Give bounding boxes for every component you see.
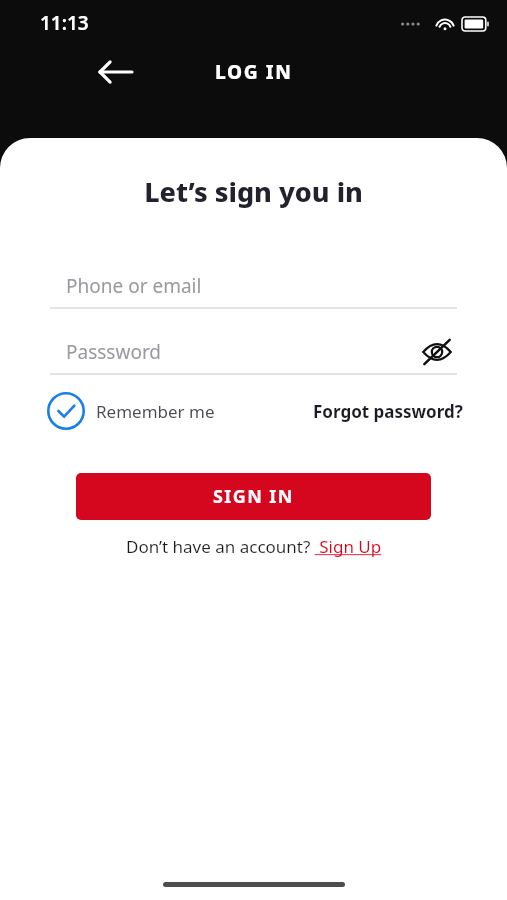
button[interactable]: Passsword bbox=[50, 331, 457, 373]
staticText: 11:13 bbox=[40, 10, 89, 36]
button[interactable]: Back bbox=[88, 49, 144, 95]
staticText: Don’t have an account? Sign Up bbox=[126, 535, 382, 558]
button[interactable]: SIGN IN bbox=[76, 473, 431, 520]
button[interactable]: Phone or email bbox=[50, 265, 457, 307]
staticText: Passsword bbox=[66, 339, 162, 365]
button[interactable]: Show password bbox=[417, 332, 457, 372]
staticText: SIGN IN bbox=[213, 484, 294, 509]
staticText: Phone or email bbox=[66, 273, 202, 299]
staticText: Remember me bbox=[96, 400, 215, 423]
button[interactable]: Don’t have an account? Sign Up bbox=[126, 535, 382, 558]
staticText: Let’s sign you in bbox=[0, 173, 507, 210]
button[interactable]: Forgot password? bbox=[313, 400, 463, 423]
button[interactable]: Remember me bbox=[47, 392, 219, 430]
staticText: Forgot password? bbox=[313, 400, 463, 423]
staticText: LOG IN bbox=[215, 59, 293, 85]
